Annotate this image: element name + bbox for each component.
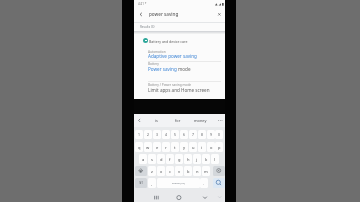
button[interactable]: f xyxy=(166,154,174,164)
button[interactable]: , xyxy=(148,178,156,188)
button[interactable]: t xyxy=(171,142,179,152)
button[interactable]: y xyxy=(180,142,188,152)
staticText: 9 xyxy=(210,132,212,137)
staticText: 5 xyxy=(174,132,176,137)
button[interactable]: p xyxy=(215,142,223,152)
button[interactable] xyxy=(200,193,210,201)
button[interactable]: Battery and device care xyxy=(140,35,231,44)
button[interactable]: l xyxy=(211,154,219,164)
staticText: Adaptive power saving xyxy=(148,53,197,59)
button[interactable]: 4 xyxy=(162,130,170,139)
staticText: q xyxy=(138,145,141,150)
button[interactable]: j xyxy=(193,154,201,164)
button[interactable]: w xyxy=(144,142,152,152)
staticText: x xyxy=(160,169,163,174)
button[interactable] xyxy=(215,114,225,127)
button[interactable]: money xyxy=(191,114,210,127)
button[interactable]: n xyxy=(193,166,201,176)
button[interactable] xyxy=(213,178,225,188)
button[interactable]: q xyxy=(135,142,143,152)
staticText: 4 xyxy=(165,132,167,137)
staticText: t xyxy=(174,145,176,150)
button[interactable]: u xyxy=(189,142,197,152)
staticText: y xyxy=(183,145,186,150)
button[interactable]: e xyxy=(153,142,161,152)
button[interactable]: i xyxy=(198,142,206,152)
button[interactable]: z xyxy=(148,166,156,176)
button[interactable]: is xyxy=(148,114,164,127)
staticText: !#1 xyxy=(139,181,143,185)
staticText: b xyxy=(187,169,190,174)
button[interactable]: b xyxy=(184,166,192,176)
staticText: Results (3) xyxy=(140,25,155,29)
button[interactable]: 9 xyxy=(207,130,215,139)
staticText: l xyxy=(214,157,216,162)
staticText: m xyxy=(204,169,208,174)
staticText: i xyxy=(201,145,203,150)
button[interactable]: h xyxy=(184,154,192,164)
button[interactable]: 7 xyxy=(189,130,197,139)
staticText: r xyxy=(165,145,167,150)
staticText: 6 xyxy=(183,132,185,137)
staticText: z xyxy=(151,169,153,174)
staticText: 7 xyxy=(192,132,194,137)
staticText: for xyxy=(175,118,181,123)
button[interactable]: Power saving xyxy=(148,66,191,72)
staticText: Battery xyxy=(148,62,159,66)
staticText: n xyxy=(196,169,199,174)
staticText: 1 xyxy=(138,132,140,137)
staticText: 2 xyxy=(147,132,149,137)
staticText: j xyxy=(196,157,198,162)
button[interactable]: m xyxy=(202,166,210,176)
staticText: f xyxy=(169,157,171,162)
staticText: g xyxy=(178,157,181,162)
button[interactable]: s xyxy=(148,154,156,164)
button[interactable]: r xyxy=(162,142,170,152)
button[interactable] xyxy=(213,166,225,176)
button[interactable]: c xyxy=(166,166,174,176)
button[interactable]: Adaptive power saving xyxy=(148,54,239,60)
button[interactable]: !#1 xyxy=(135,178,147,188)
button[interactable]: English (US) xyxy=(157,178,200,188)
button[interactable]: a xyxy=(139,154,147,164)
button[interactable] xyxy=(151,193,161,201)
staticText: . xyxy=(203,181,205,186)
staticText: mode xyxy=(178,66,191,72)
staticText: d xyxy=(160,157,163,162)
button[interactable]: 3 xyxy=(153,130,161,139)
button[interactable]: Limit apps and Home screen xyxy=(148,88,239,94)
staticText: e xyxy=(156,145,159,150)
button[interactable] xyxy=(174,193,184,201)
staticText: 4:21 * xyxy=(138,2,147,6)
button[interactable]: k xyxy=(202,154,210,164)
button[interactable]: g xyxy=(175,154,183,164)
button[interactable] xyxy=(135,166,147,176)
button[interactable]: v xyxy=(175,166,183,176)
staticText: 0 xyxy=(218,132,220,137)
button[interactable]: 5 xyxy=(171,130,179,139)
staticText: k xyxy=(205,157,208,162)
button[interactable]: o xyxy=(207,142,215,152)
button[interactable]: power saving xyxy=(134,9,225,22)
button[interactable]: 2 xyxy=(144,130,152,139)
button[interactable]: 0 xyxy=(215,130,223,139)
button[interactable]: 6 xyxy=(180,130,188,139)
staticText: Automation xyxy=(148,50,166,54)
staticText: , xyxy=(151,181,153,186)
staticText: money xyxy=(194,118,207,123)
staticText: u xyxy=(192,145,195,150)
staticText: Power saving xyxy=(148,66,178,72)
button[interactable]: 1 xyxy=(135,130,143,139)
staticText: is xyxy=(155,118,158,123)
button[interactable]: 8 xyxy=(198,130,206,139)
staticText: Battery and device care xyxy=(149,39,188,44)
staticText: v xyxy=(178,169,181,174)
staticText: o xyxy=(210,145,213,150)
button[interactable]: for xyxy=(170,114,186,127)
button[interactable]: d xyxy=(157,154,165,164)
staticText: a xyxy=(142,157,145,162)
staticText: 3 xyxy=(156,132,158,137)
button[interactable]: . xyxy=(200,178,208,188)
button[interactable]: x xyxy=(157,166,165,176)
staticText: w xyxy=(146,145,150,150)
